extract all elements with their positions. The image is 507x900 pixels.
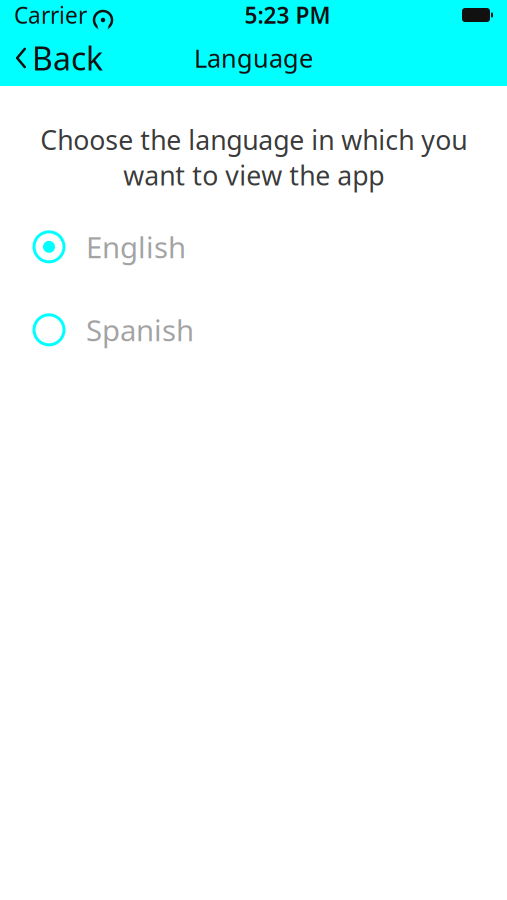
button[interactable]: Spanish <box>0 302 507 358</box>
staticText: Spanish <box>86 310 194 349</box>
staticText: Back <box>32 37 103 79</box>
button[interactable]: English <box>0 219 507 275</box>
staticText: English <box>86 227 186 266</box>
staticText: Language <box>194 41 313 75</box>
staticText: Carrier <box>14 0 87 30</box>
staticText: 5:23 PM <box>244 0 330 30</box>
staticText: Choose the language in which you want to… <box>40 122 467 193</box>
button[interactable]: Back <box>0 30 117 86</box>
